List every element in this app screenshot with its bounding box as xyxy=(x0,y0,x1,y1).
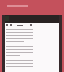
button[interactable] xyxy=(0,0,64,15)
